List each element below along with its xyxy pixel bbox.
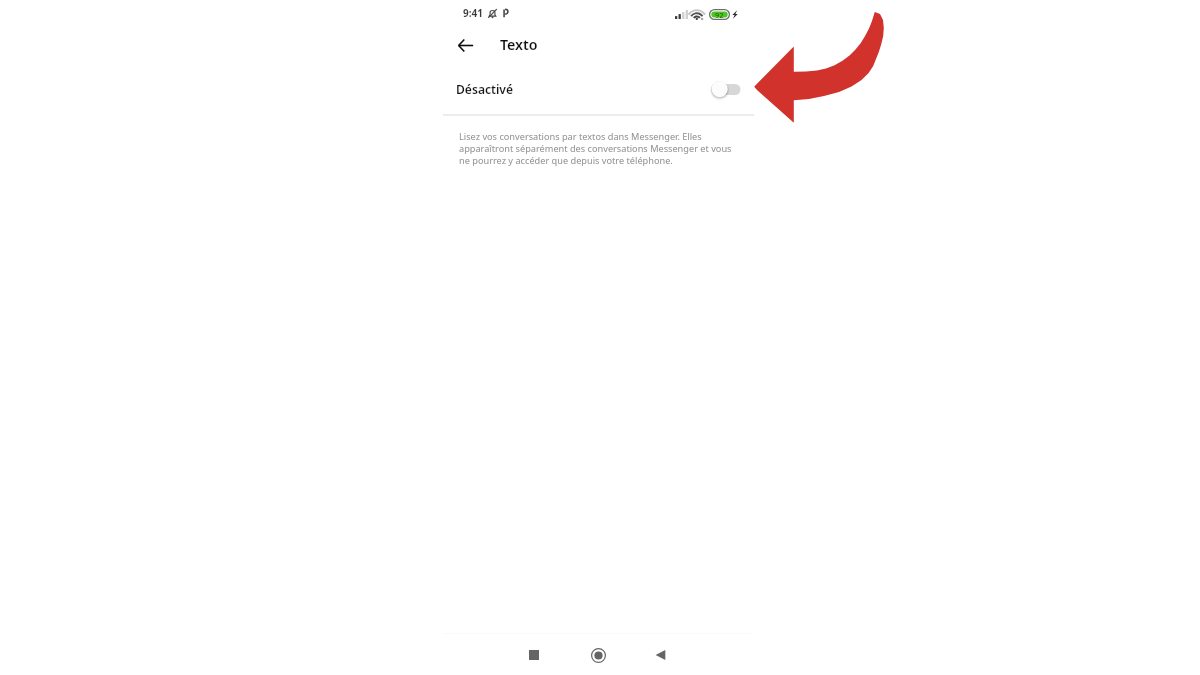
staticText: 92 (715, 10, 724, 20)
button[interactable]: Home (585, 642, 611, 668)
button[interactable]: Back (647, 642, 673, 668)
button[interactable]: Désactivé (443, 64, 754, 114)
button[interactable]: Recent apps (521, 642, 547, 668)
button[interactable]: Back (450, 30, 480, 60)
button[interactable]: Toggle texts (708, 76, 744, 102)
staticText: Texto (500, 35, 538, 54)
staticText: 9:41 (463, 6, 483, 20)
staticText: Lisez vos conversations par textos dans … (459, 130, 732, 166)
staticText: Désactivé (456, 81, 514, 97)
